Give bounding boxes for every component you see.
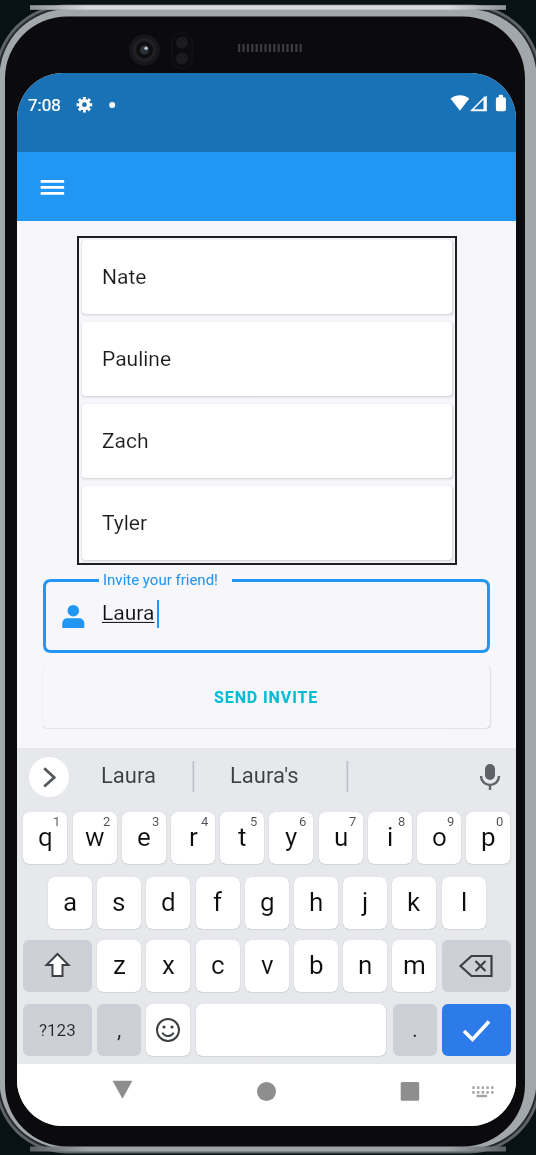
button[interactable]: Done <box>442 1004 511 1056</box>
button[interactable]: Open navigation menu <box>28 165 72 209</box>
staticText: Pauline <box>102 347 172 372</box>
button[interactable]: a <box>48 877 92 929</box>
button[interactable]: o <box>417 812 461 864</box>
staticText: SEND INVITE <box>214 688 319 707</box>
button[interactable]: Home <box>246 1064 286 1104</box>
button[interactable]: p <box>466 812 510 864</box>
button[interactable]: v <box>245 940 289 992</box>
staticText: 7:08 <box>28 95 61 115</box>
staticText: ?123 <box>39 1020 76 1040</box>
button[interactable]: backspace <box>442 940 511 992</box>
button[interactable]: w <box>73 812 117 864</box>
staticText: 4 <box>201 814 209 829</box>
button[interactable]: Pauline <box>82 322 452 396</box>
staticText: 2 <box>103 814 111 829</box>
button[interactable]: Expand toolbar <box>29 757 69 797</box>
button[interactable]: Switch keyboard <box>464 1064 504 1104</box>
staticText: Invite your friend! <box>103 571 218 589</box>
staticText: z <box>113 950 126 980</box>
staticText: o <box>432 822 447 852</box>
staticText: n <box>358 950 373 980</box>
button[interactable]: h <box>294 877 338 929</box>
staticText: p <box>481 822 496 852</box>
button[interactable]: z <box>97 940 141 992</box>
button[interactable]: i <box>368 812 412 864</box>
staticText: s <box>112 887 126 917</box>
button[interactable]: b <box>294 940 338 992</box>
staticText: 8 <box>398 814 406 829</box>
staticText: f <box>213 887 223 917</box>
button[interactable]: x <box>146 940 190 992</box>
staticText: Laura's <box>230 763 299 789</box>
button[interactable]: c <box>196 940 240 992</box>
staticText: q <box>38 822 53 852</box>
staticText: w <box>85 822 105 852</box>
staticText: Nate <box>102 265 147 290</box>
button[interactable]: d <box>146 877 190 929</box>
staticText: Zach <box>102 429 149 454</box>
button[interactable]: s <box>97 877 141 929</box>
button[interactable]: ?123 <box>23 1004 92 1056</box>
staticText: 1 <box>53 814 61 829</box>
staticText: 9 <box>447 814 455 829</box>
staticText: . <box>412 1017 418 1043</box>
staticText: Tyler <box>102 511 148 536</box>
staticText: Laura <box>101 763 156 789</box>
staticText: u <box>334 822 349 852</box>
staticText: h <box>309 887 324 917</box>
button[interactable]: m <box>392 940 436 992</box>
staticText: k <box>407 887 421 917</box>
button[interactable]: n <box>343 940 387 992</box>
button[interactable]: Zach <box>82 404 452 478</box>
button[interactable]: u <box>319 812 363 864</box>
button[interactable]: SEND INVITE <box>43 666 490 728</box>
button[interactable]: q <box>23 812 67 864</box>
staticText: 0 <box>496 814 504 829</box>
staticText: , <box>117 1017 122 1043</box>
staticText: m <box>403 950 426 980</box>
staticText: x <box>162 950 175 980</box>
button[interactable]: Back <box>102 1064 142 1104</box>
button[interactable]: f <box>196 877 240 929</box>
staticText: g <box>260 887 275 917</box>
staticText: d <box>161 887 176 917</box>
staticText: t <box>238 822 247 852</box>
staticText: 6 <box>299 814 307 829</box>
staticText: 7 <box>349 814 357 829</box>
button[interactable] <box>146 1004 190 1056</box>
staticText: v <box>261 950 274 980</box>
staticText: Laura <box>102 601 155 626</box>
button[interactable]: t <box>220 812 264 864</box>
button[interactable]: r <box>171 812 215 864</box>
button[interactable]: Tyler <box>82 486 452 560</box>
staticText: b <box>309 950 324 980</box>
staticText: l <box>461 887 468 917</box>
staticText: 3 <box>152 814 160 829</box>
staticText: i <box>387 822 394 852</box>
button[interactable]: y <box>269 812 313 864</box>
staticText: e <box>137 822 151 852</box>
staticText: 5 <box>250 814 258 829</box>
button[interactable]: . <box>393 1004 437 1056</box>
button[interactable]: j <box>343 877 387 929</box>
button[interactable]: l <box>442 877 486 929</box>
button[interactable]: shift <box>23 940 92 992</box>
button[interactable]: Nate <box>82 240 452 314</box>
staticText: j <box>362 887 369 917</box>
button[interactable]: , <box>97 1004 141 1056</box>
button[interactable]: Recent apps <box>390 1064 430 1104</box>
staticText: c <box>211 950 225 980</box>
staticText: a <box>63 887 78 917</box>
staticText: r <box>189 822 198 852</box>
button[interactable]: e <box>122 812 166 864</box>
button[interactable]: g <box>245 877 289 929</box>
staticText: y <box>285 822 298 852</box>
button[interactable]: k <box>392 877 436 929</box>
